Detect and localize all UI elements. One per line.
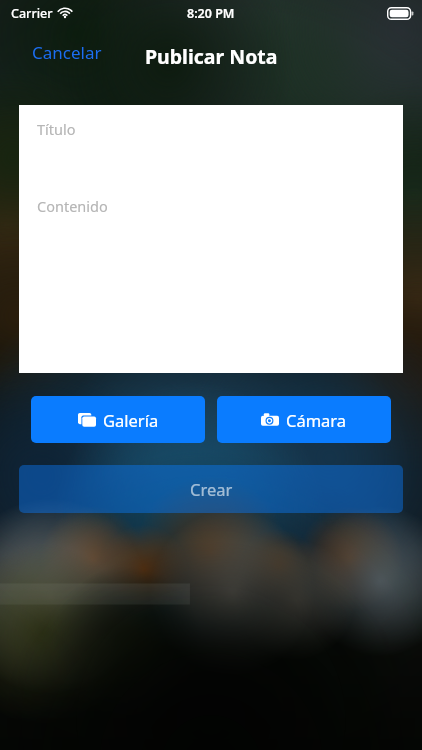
staticText: 8:20 PM: [187, 5, 235, 22]
button[interactable]: Crear: [19, 465, 403, 513]
button[interactable]: Galería: [31, 396, 205, 443]
button[interactable]: Título: [37, 119, 403, 139]
button[interactable]: Cancelar: [26, 35, 108, 70]
button[interactable]: Cámara: [217, 396, 391, 443]
staticText: Carrier: [11, 5, 53, 22]
staticText: Galería: [103, 409, 159, 431]
staticText: Cámara: [286, 409, 347, 431]
staticText: Cancelar: [32, 41, 102, 64]
staticText: Crear: [190, 478, 233, 500]
staticText: Publicar Nota: [145, 43, 278, 70]
button[interactable]: Contenido: [37, 196, 403, 216]
